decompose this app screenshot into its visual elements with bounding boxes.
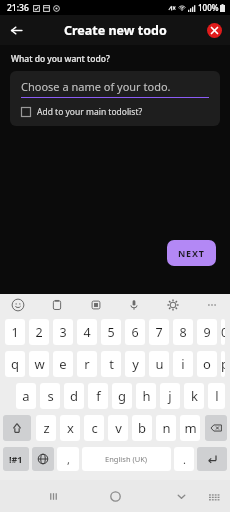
staticText: o — [203, 355, 211, 373]
button[interactable]: k — [184, 383, 204, 409]
staticText: y — [132, 355, 139, 373]
button[interactable]: Voice input — [126, 297, 142, 313]
staticText: a — [22, 387, 30, 405]
button[interactable]: 1 — [5, 319, 25, 345]
staticText: s — [47, 387, 54, 405]
staticText: , — [67, 452, 70, 467]
button[interactable]: Recent apps — [42, 485, 64, 507]
button[interactable]: d — [64, 383, 84, 409]
button[interactable]: u — [149, 351, 169, 377]
staticText: English (UK) — [105, 454, 148, 464]
button[interactable]: 8 — [173, 319, 193, 345]
button[interactable]: g — [112, 383, 132, 409]
button[interactable]: e — [53, 351, 73, 377]
button[interactable]: 6 — [125, 319, 145, 345]
button[interactable]: p — [221, 351, 225, 377]
button[interactable]: a — [16, 383, 36, 409]
button[interactable]: . — [174, 447, 194, 471]
button[interactable]: 2 — [29, 319, 49, 345]
button[interactable]: 5 — [101, 319, 121, 345]
button[interactable]: Settings — [165, 297, 181, 313]
button[interactable]: English (UK) — [82, 447, 171, 471]
button[interactable]: w — [29, 351, 49, 377]
button[interactable]: 7 — [149, 319, 169, 345]
button[interactable]: Home — [104, 485, 126, 507]
button[interactable]: NEXT — [167, 240, 216, 266]
staticText: z — [43, 419, 50, 437]
staticText: i — [181, 355, 185, 373]
button[interactable]: n — [156, 415, 176, 441]
staticText: . — [183, 452, 186, 467]
staticText: What do you want todo? — [11, 53, 110, 65]
staticText: d — [70, 387, 78, 405]
button[interactable]: Clipboard — [49, 297, 65, 313]
button[interactable]: b — [132, 415, 152, 441]
staticText: n — [162, 419, 171, 437]
staticText: h — [142, 387, 151, 405]
staticText: Add to your main todolist? — [37, 106, 143, 118]
staticText: 100% — [198, 2, 219, 13]
staticText: 8 — [179, 324, 187, 341]
staticText: b — [138, 419, 146, 437]
button[interactable]: , — [57, 447, 79, 471]
button[interactable]: v — [108, 415, 128, 441]
button[interactable]: o — [197, 351, 217, 377]
button[interactable]: 3 — [53, 319, 73, 345]
button[interactable]: q — [5, 351, 25, 377]
button[interactable]: 0 — [221, 319, 225, 345]
button[interactable]: i — [173, 351, 193, 377]
button[interactable]: c — [84, 415, 104, 441]
staticText: 0 — [221, 324, 225, 341]
button[interactable]: x — [60, 415, 80, 441]
staticText: x — [67, 419, 74, 437]
staticText: 21:36 — [7, 2, 29, 14]
button[interactable]: Emoji — [10, 297, 26, 313]
staticText: l — [215, 387, 219, 405]
staticText: k — [191, 387, 198, 405]
button[interactable]: Enter — [197, 447, 227, 471]
staticText: 4 — [83, 324, 91, 341]
button[interactable]: l — [208, 383, 225, 409]
button[interactable]: r — [77, 351, 97, 377]
button[interactable]: j — [160, 383, 180, 409]
staticText: 5 — [107, 324, 115, 341]
button[interactable]: Switch keyboard — [203, 485, 225, 507]
staticText: p — [221, 355, 225, 373]
staticText: 3 — [59, 324, 67, 341]
staticText: r — [84, 355, 90, 373]
button[interactable]: Hide keyboard — [170, 485, 192, 507]
button[interactable]: s — [40, 383, 60, 409]
button[interactable]: Back — [5, 19, 27, 41]
button[interactable]: Close — [203, 19, 225, 41]
button[interactable]: 4 — [77, 319, 97, 345]
button[interactable]: Choose a name of your todo. — [21, 79, 209, 94]
button[interactable]: Stickers — [88, 297, 104, 313]
staticText: 2 — [35, 324, 43, 341]
button[interactable]: More options — [204, 297, 220, 313]
staticText: !#1 — [9, 453, 23, 465]
staticText: 7 — [155, 324, 163, 341]
button[interactable]: h — [136, 383, 156, 409]
button[interactable]: f — [88, 383, 108, 409]
staticText: v — [115, 419, 122, 437]
button[interactable]: Add to your main todolist? — [21, 106, 143, 118]
button[interactable]: 9 — [197, 319, 217, 345]
staticText: q — [11, 355, 19, 373]
staticText: Create new todo — [64, 22, 167, 39]
button[interactable]: Shift — [3, 415, 31, 441]
button[interactable]: m — [180, 415, 200, 441]
button[interactable]: t — [101, 351, 121, 377]
button[interactable]: !#1 — [3, 447, 29, 471]
staticText: NEXT — [178, 247, 205, 259]
button[interactable]: Backspace — [205, 415, 227, 441]
staticText: w — [34, 355, 45, 373]
staticText: f — [96, 387, 101, 405]
button[interactable]: z — [36, 415, 56, 441]
staticText: t — [109, 355, 114, 373]
staticText: 9 — [203, 324, 211, 341]
staticText: 1 — [11, 324, 19, 341]
staticText: 6 — [131, 324, 139, 341]
button[interactable]: Change language — [32, 447, 54, 471]
staticText: j — [168, 387, 172, 405]
button[interactable]: y — [125, 351, 145, 377]
